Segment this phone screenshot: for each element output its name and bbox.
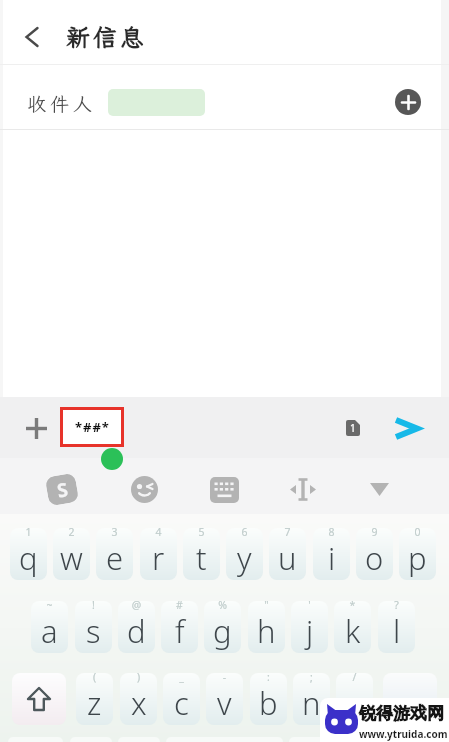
staticText: : xyxy=(250,670,287,684)
staticText: b xyxy=(259,682,278,724)
button[interactable] xyxy=(370,483,389,496)
staticText: 收件人 xyxy=(27,91,97,116)
staticText: v xyxy=(217,682,232,724)
button[interactable]: h xyxy=(248,601,285,653)
button[interactable]: s xyxy=(75,601,112,653)
button[interactable]: S xyxy=(45,473,79,506)
staticText: f xyxy=(175,610,185,652)
staticText: t xyxy=(196,537,207,579)
staticText: d xyxy=(127,610,146,652)
staticText: ! xyxy=(75,598,112,612)
staticText: @ xyxy=(118,598,155,612)
button[interactable]: *##* xyxy=(60,407,124,447)
staticText: ( xyxy=(76,670,113,684)
button[interactable] xyxy=(12,673,66,725)
staticText: y xyxy=(237,537,252,579)
button[interactable] xyxy=(390,414,422,443)
staticText: m xyxy=(341,682,369,724)
button[interactable]: n xyxy=(293,673,330,725)
staticText: ) xyxy=(120,670,157,684)
staticText: a xyxy=(41,610,58,652)
staticText: 9 xyxy=(356,525,393,539)
staticText: 0 xyxy=(399,525,436,539)
staticText: l xyxy=(393,610,401,652)
staticText: ; xyxy=(293,670,330,684)
staticText: - xyxy=(206,670,243,684)
staticText: " xyxy=(248,598,285,612)
staticText: k xyxy=(345,610,361,652)
button[interactable]: i xyxy=(313,528,350,580)
staticText: 1 xyxy=(10,525,47,539)
staticText: i xyxy=(328,537,336,579)
button[interactable]: y xyxy=(226,528,263,580)
button[interactable]: x xyxy=(120,673,157,725)
button[interactable]: v xyxy=(206,673,243,725)
button[interactable]: z xyxy=(76,673,113,725)
button[interactable]: m xyxy=(336,673,373,725)
button[interactable]: t xyxy=(183,528,220,580)
button[interactable]: f xyxy=(161,601,198,653)
staticText: ? xyxy=(378,598,415,612)
button[interactable]: q xyxy=(10,528,47,580)
staticText: 2 xyxy=(53,525,90,539)
button[interactable]: j xyxy=(291,601,328,653)
staticText: r xyxy=(152,537,165,579)
staticText: p xyxy=(408,537,427,579)
button[interactable] xyxy=(290,478,316,501)
staticText: % xyxy=(204,598,241,612)
staticText: 1 xyxy=(350,421,356,435)
button[interactable] xyxy=(395,89,421,115)
staticText: n xyxy=(302,682,321,724)
staticText: www.ytruida.com xyxy=(359,727,448,741)
button[interactable]: a xyxy=(31,601,68,653)
staticText: 6 xyxy=(226,525,263,539)
staticText: h xyxy=(257,610,276,652)
staticText: c xyxy=(174,682,189,724)
button[interactable]: l xyxy=(378,601,415,653)
staticText: S xyxy=(55,476,70,504)
staticText: e xyxy=(106,537,124,579)
staticText: ~ xyxy=(31,598,68,612)
staticText: x xyxy=(131,682,147,724)
button[interactable]: d xyxy=(118,601,155,653)
staticText: q xyxy=(19,537,38,579)
staticText: 新信息 xyxy=(66,21,147,53)
staticText: 8 xyxy=(313,525,350,539)
staticText: u xyxy=(278,537,297,579)
staticText: z xyxy=(87,682,102,724)
staticText: 锐得游戏网 xyxy=(359,703,444,724)
button[interactable]: p xyxy=(399,528,436,580)
button[interactable]: e xyxy=(96,528,133,580)
button[interactable] xyxy=(210,477,239,503)
button[interactable] xyxy=(131,476,158,503)
staticText: ' xyxy=(291,598,328,612)
staticText: # xyxy=(161,598,198,612)
button[interactable] xyxy=(383,673,437,725)
staticText: _ xyxy=(163,670,200,684)
staticText: * xyxy=(334,598,371,612)
button[interactable]: c xyxy=(163,673,200,725)
staticText: 4 xyxy=(140,525,177,539)
staticText: *##* xyxy=(75,418,110,436)
staticText: j xyxy=(306,610,314,652)
button[interactable]: u xyxy=(269,528,306,580)
button[interactable]: g xyxy=(204,601,241,653)
staticText: o xyxy=(365,537,384,579)
staticText: / xyxy=(336,670,373,684)
staticText: 5 xyxy=(183,525,220,539)
button[interactable]: b xyxy=(250,673,287,725)
button[interactable] xyxy=(14,17,50,57)
button[interactable]: o xyxy=(356,528,393,580)
button[interactable]: r xyxy=(140,528,177,580)
staticText: 3 xyxy=(96,525,133,539)
staticText: s xyxy=(86,610,101,652)
staticText: 7 xyxy=(269,525,306,539)
staticText: w xyxy=(60,537,83,579)
button[interactable]: k xyxy=(334,601,371,653)
staticText: g xyxy=(213,610,232,652)
button[interactable]: w xyxy=(53,528,90,580)
